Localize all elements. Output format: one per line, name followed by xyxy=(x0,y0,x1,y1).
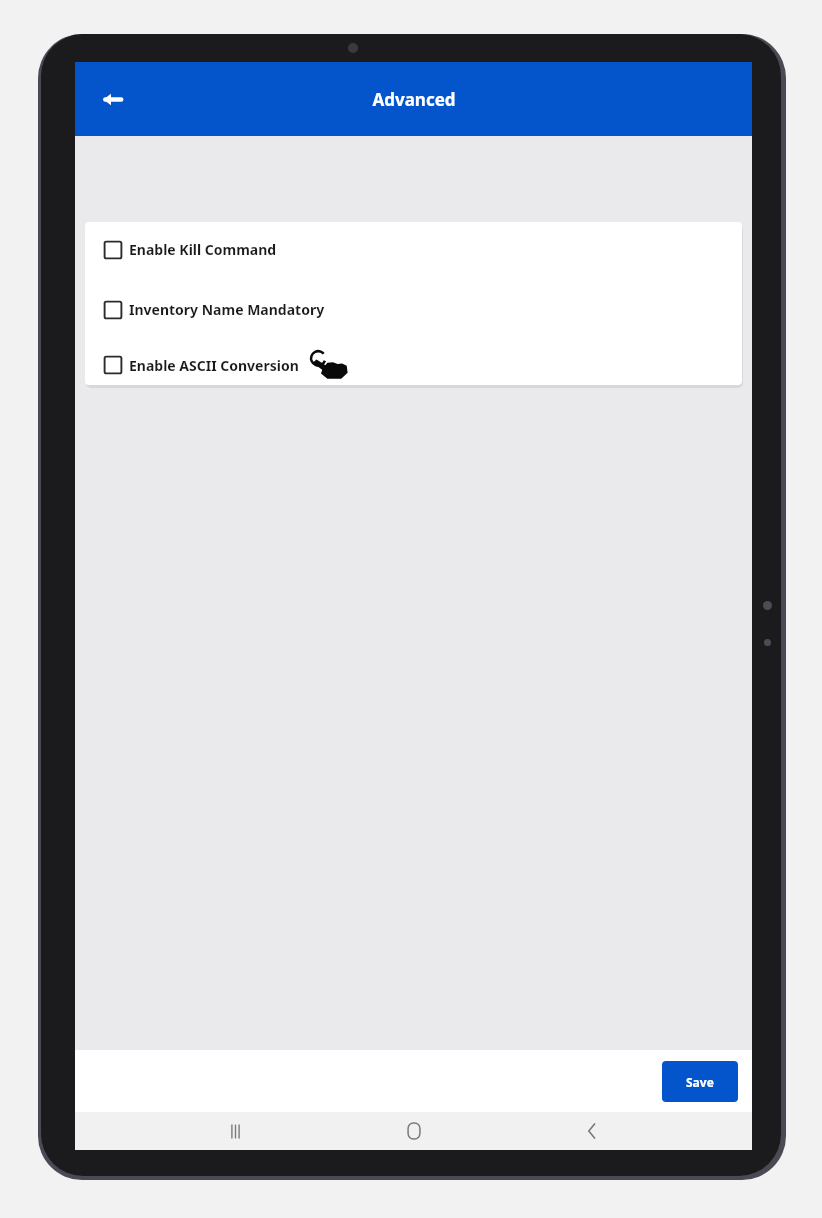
button[interactable]: Enable ASCII Conversion xyxy=(85,351,742,379)
staticText: Enable Kill Command xyxy=(129,240,277,259)
staticText: Inventory Name Mandatory xyxy=(129,300,325,319)
button[interactable]: Enable Kill Command xyxy=(85,235,742,263)
button[interactable]: Home xyxy=(396,1113,432,1149)
staticText: Enable ASCII Conversion xyxy=(129,356,299,375)
button[interactable]: Save xyxy=(662,1061,738,1102)
button[interactable]: Back xyxy=(91,78,133,120)
staticText: Advanced xyxy=(372,88,456,111)
staticText: Save xyxy=(686,1074,714,1090)
button[interactable]: Recent apps xyxy=(217,1113,253,1149)
button[interactable]: Back xyxy=(574,1113,610,1149)
button[interactable]: Inventory Name Mandatory xyxy=(85,295,742,323)
